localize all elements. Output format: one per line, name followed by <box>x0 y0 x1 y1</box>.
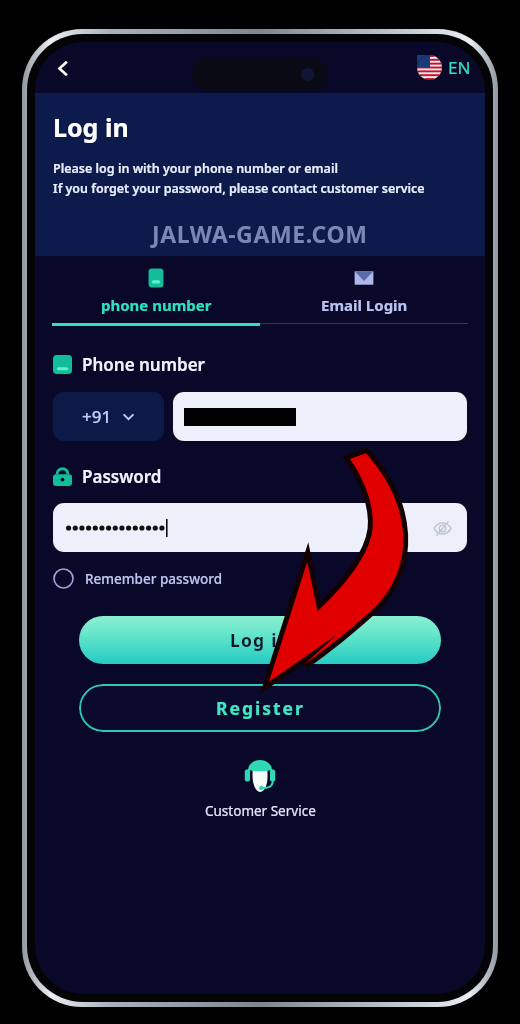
staticText: +91 <box>82 405 112 428</box>
staticText: Log in <box>53 110 129 144</box>
staticText: Register <box>216 696 305 720</box>
button[interactable]: Customer Service <box>35 756 485 820</box>
button[interactable]: Register <box>79 684 441 732</box>
button[interactable]: Remember password <box>53 568 223 589</box>
button[interactable]: Email Login <box>260 266 468 324</box>
staticText: Please log in with your phone number or … <box>53 160 338 177</box>
button[interactable]: Language EN <box>417 55 471 80</box>
button[interactable]: Log in <box>79 616 441 664</box>
staticText: phone number <box>101 295 212 315</box>
staticText: Phone number <box>82 353 205 376</box>
staticText: JALWA-GAME.COM <box>152 218 368 249</box>
staticText: Email Login <box>321 295 408 315</box>
button[interactable]: Back <box>45 50 81 86</box>
button[interactable]: Show password <box>53 503 467 552</box>
staticText: EN <box>448 56 471 79</box>
staticText: Password <box>82 465 162 488</box>
staticText: Log in <box>230 628 291 652</box>
button[interactable]: phone number <box>52 266 260 326</box>
button[interactable]: Show password <box>431 517 453 539</box>
staticText: Remember password <box>85 570 223 588</box>
staticText: If you forget your password, please cont… <box>53 180 425 197</box>
button[interactable] <box>173 392 467 441</box>
staticText: Customer Service <box>205 802 316 820</box>
button[interactable]: +91 <box>53 392 164 441</box>
